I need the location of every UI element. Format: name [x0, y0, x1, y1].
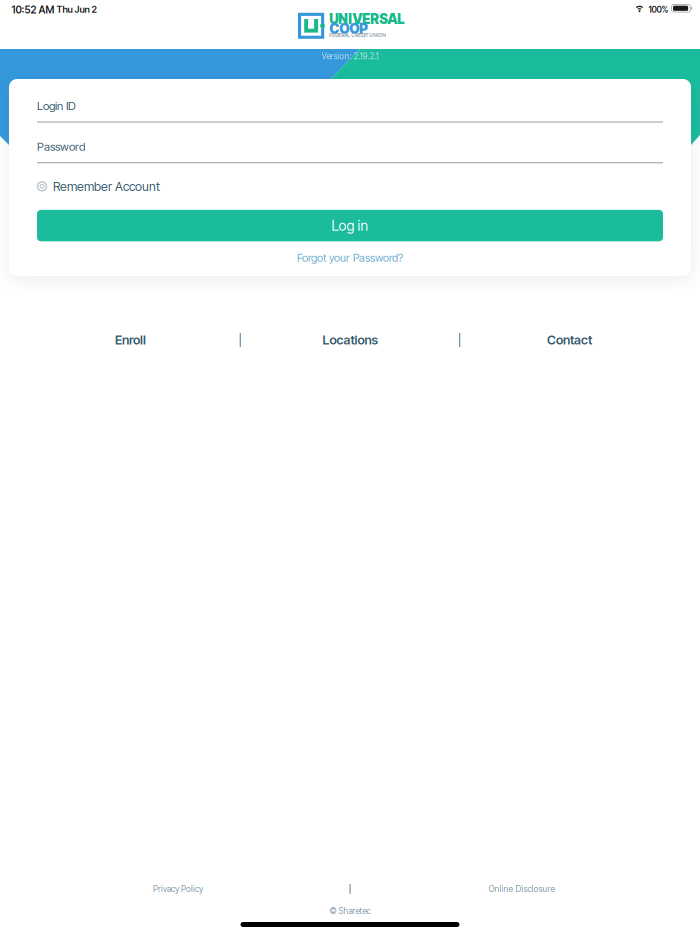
button[interactable]: Contact [460, 330, 678, 350]
staticText: Password [37, 140, 85, 154]
button[interactable]: Log in [37, 210, 663, 241]
staticText: 10:52 AM [11, 4, 54, 16]
staticText: COOP [329, 20, 368, 37]
staticText: Thu Jun 2 [56, 4, 96, 15]
staticText: UNIVERSAL [329, 11, 404, 27]
staticText: Log in [331, 217, 368, 234]
button[interactable]: Privacy Policy [6, 882, 350, 896]
staticText: Version: 2.19.2.1 [321, 51, 378, 61]
staticText: 100% [648, 4, 668, 15]
button[interactable]: Forgot your Password? [37, 251, 663, 265]
button[interactable]: Remember Account [37, 178, 663, 194]
staticText: FEDERAL CREDIT UNION [329, 32, 386, 38]
staticText: © Sharetec [329, 906, 370, 916]
staticText: Enroll [115, 332, 146, 348]
staticText: Remember Account [53, 179, 160, 194]
staticText: Privacy Policy [153, 884, 203, 894]
button[interactable]: Enroll [21, 330, 240, 350]
staticText: Locations [322, 332, 377, 348]
staticText: Contact [547, 332, 592, 348]
staticText: Forgot your Password? [297, 251, 403, 264]
staticText: Login ID [37, 99, 76, 113]
button[interactable]: Online Disclosure [350, 882, 694, 896]
staticText: Online Disclosure [488, 884, 555, 894]
button[interactable]: Locations [241, 330, 459, 350]
